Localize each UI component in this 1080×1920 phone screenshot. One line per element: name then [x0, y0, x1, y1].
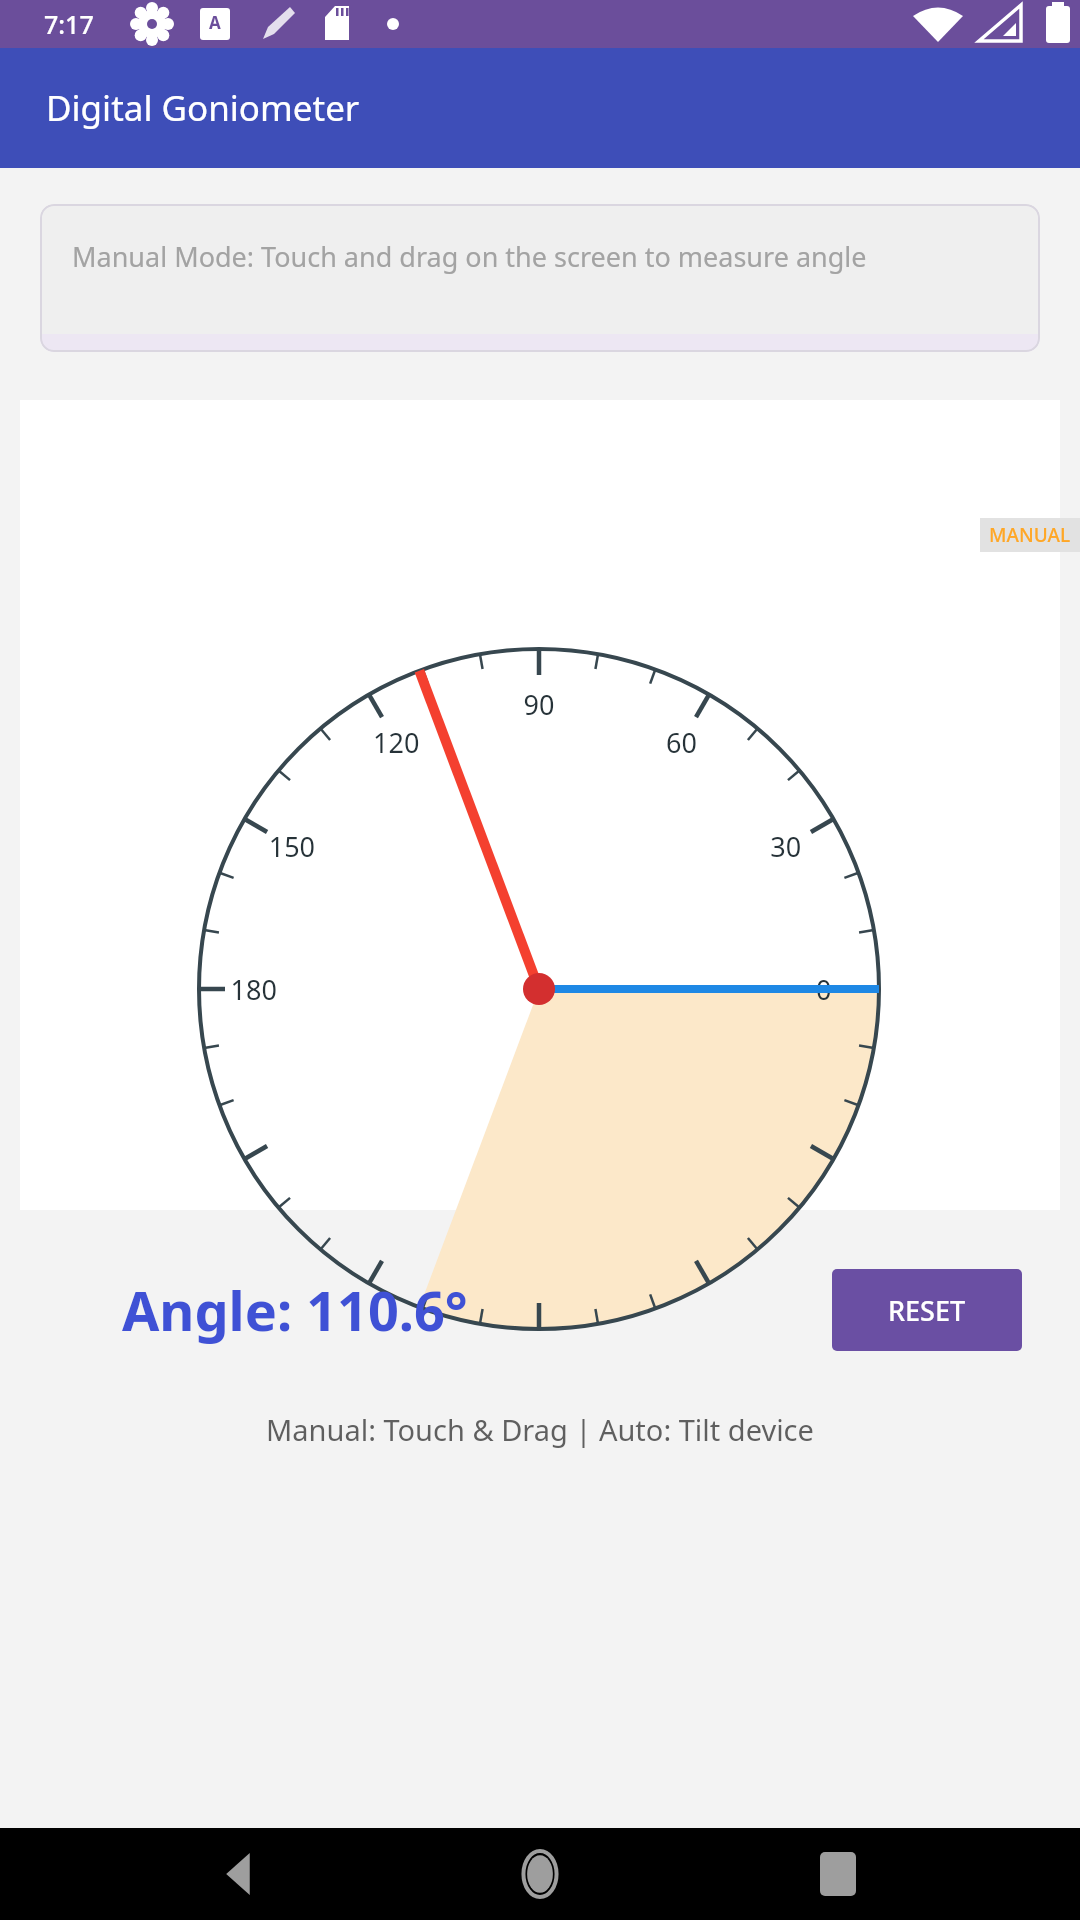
button[interactable]: Manual Mode: Touch and drag on the scree… [40, 204, 1040, 352]
button[interactable]: Home [485, 1828, 595, 1920]
button[interactable]: RESET [832, 1269, 1022, 1351]
staticText: MANUAL [989, 522, 1071, 548]
staticText: RESET [888, 1292, 966, 1329]
staticText: Manual: Touch & Drag | Auto: Tilt device [266, 1410, 814, 1449]
staticText: Manual Mode: Touch and drag on the scree… [72, 238, 867, 275]
staticText: Digital Goniometer [46, 84, 360, 132]
button[interactable]: MANUAL [20, 400, 1060, 1210]
button[interactable]: Back [188, 1828, 298, 1920]
button[interactable]: Recent apps [783, 1828, 893, 1920]
staticText: Angle: 110.6° [122, 1273, 468, 1347]
